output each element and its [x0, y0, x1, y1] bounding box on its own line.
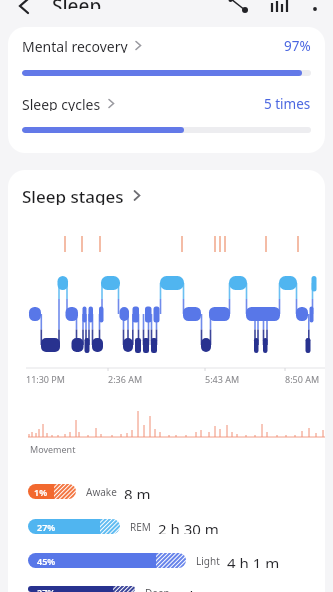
staticText: 5:43 AM	[205, 373, 240, 385]
button[interactable]: Sleep cycles	[22, 95, 311, 111]
staticText: 45%	[37, 555, 56, 567]
staticText: 27%	[37, 586, 56, 592]
staticText: Awake	[86, 485, 117, 499]
staticText: Movement	[30, 443, 76, 455]
staticText: 11:30 PM	[26, 373, 65, 385]
staticText: Deep	[145, 586, 170, 592]
staticText: Sleep cycles	[22, 95, 101, 111]
staticText: 4 h 1 m	[227, 553, 280, 568]
button[interactable]	[0, 0, 40, 16]
staticText: 1%	[34, 486, 48, 498]
button[interactable]: 27%	[28, 519, 219, 534]
staticText: 2:36 AM	[108, 373, 143, 385]
staticText: 2 h 41 m	[177, 586, 238, 592]
button[interactable]: 45%	[28, 553, 280, 568]
staticText: Sleep stages	[22, 185, 124, 205]
staticText: 27%	[37, 521, 56, 533]
staticText: 97%	[284, 37, 311, 53]
button[interactable]: 27%	[28, 586, 238, 592]
staticText: 8 m	[124, 484, 151, 499]
button[interactable]: 1%	[28, 484, 151, 499]
staticText: REM	[130, 520, 151, 534]
staticText: 8:50 AM	[285, 373, 320, 385]
staticText: Sleep	[52, 0, 102, 9]
staticText: 5 times	[264, 95, 311, 111]
staticText: Mental recovery	[22, 37, 128, 53]
button[interactable]: Mental recovery	[22, 37, 311, 53]
staticText: 2 h 30 m	[158, 519, 219, 534]
button[interactable]: Sleep stages	[22, 185, 141, 205]
staticText: Light	[196, 554, 220, 568]
